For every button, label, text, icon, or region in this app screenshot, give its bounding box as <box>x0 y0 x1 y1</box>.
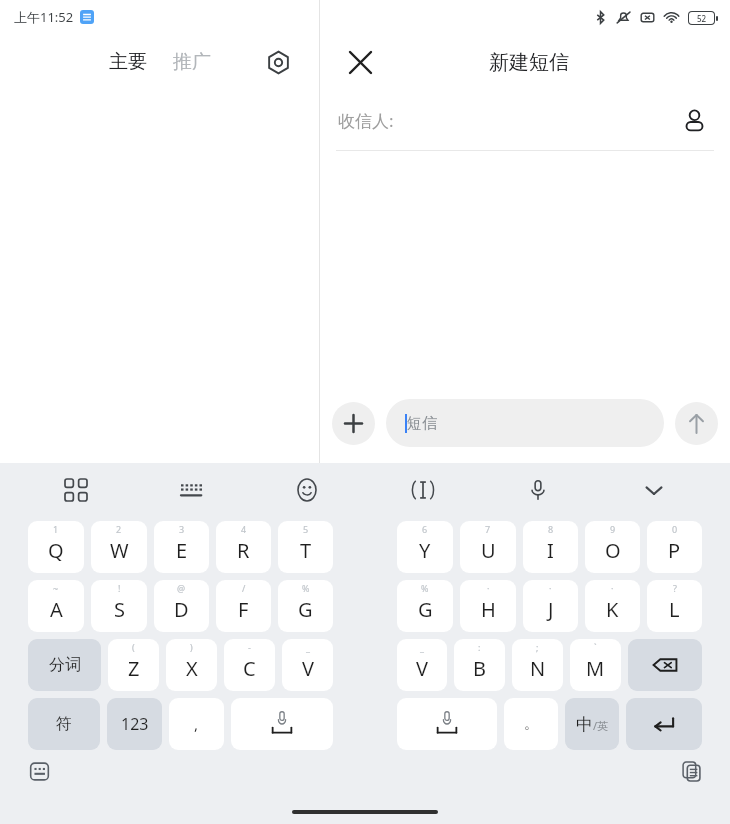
staticText: , <box>194 714 199 734</box>
staticText: 分词 <box>49 655 81 675</box>
button[interactable]: Enter <box>626 698 702 750</box>
button[interactable]: - <box>224 639 275 691</box>
staticText: /英 <box>593 718 609 733</box>
button[interactable]: ~ <box>28 580 84 632</box>
button[interactable]: Space <box>397 698 497 750</box>
button[interactable]: , <box>169 698 224 750</box>
button[interactable]: 6 <box>397 521 453 573</box>
button[interactable]: 符 <box>28 698 100 750</box>
staticText: 1 <box>53 523 59 535</box>
staticText: 符 <box>56 714 72 734</box>
staticText: ? <box>673 582 677 594</box>
staticText: V <box>416 655 428 682</box>
button[interactable]: · <box>460 580 516 632</box>
button[interactable]: ) <box>166 639 217 691</box>
button[interactable]: Settings <box>257 41 299 83</box>
button[interactable]: ( <box>108 639 159 691</box>
button[interactable]: 0 <box>647 521 702 573</box>
button[interactable]: ? <box>647 580 702 632</box>
button[interactable]: Apps <box>56 470 96 510</box>
staticText: N <box>530 655 546 682</box>
button[interactable]: Keyboard layout <box>172 470 212 510</box>
button[interactable]: 7 <box>460 521 516 573</box>
button[interactable]: 8 <box>523 521 578 573</box>
staticText: V <box>302 655 314 682</box>
button[interactable]: Choose contact <box>676 102 712 138</box>
staticText: 上午11:52 <box>14 8 74 26</box>
button[interactable]: 5 <box>278 521 333 573</box>
button[interactable]: 。 <box>504 698 558 750</box>
button[interactable]: @ <box>154 580 209 632</box>
button[interactable]: Send <box>675 402 718 445</box>
staticText: _ <box>306 641 310 653</box>
button[interactable]: Clipboard <box>674 754 708 788</box>
button[interactable]: ` <box>570 639 621 691</box>
staticText: 推广 <box>173 50 211 74</box>
button[interactable]: 中 <box>565 698 619 750</box>
button[interactable]: _ <box>397 639 447 691</box>
button[interactable]: 推广 <box>168 43 216 81</box>
staticText: E <box>176 537 188 564</box>
button[interactable]: Delete <box>628 639 702 691</box>
staticText: ) <box>190 641 193 653</box>
staticText: B <box>473 655 486 682</box>
staticText: 3 <box>179 523 185 535</box>
staticText: C <box>243 655 256 682</box>
staticText: M <box>586 655 605 682</box>
button[interactable]: % <box>278 580 333 632</box>
button[interactable]: Close <box>338 40 382 84</box>
staticText: 9 <box>610 523 616 535</box>
staticText: : <box>478 641 481 653</box>
staticText: / <box>242 582 246 594</box>
staticText: I <box>547 537 554 564</box>
button[interactable]: _ <box>282 639 333 691</box>
staticText: A <box>50 596 63 623</box>
button[interactable]: ! <box>91 580 147 632</box>
staticText: G <box>418 596 433 623</box>
button[interactable]: Emoji <box>287 470 327 510</box>
staticText: _ <box>420 641 424 653</box>
staticText: 0 <box>672 523 678 535</box>
button[interactable]: / <box>216 580 271 632</box>
staticText: 。 <box>524 715 538 733</box>
staticText: T <box>300 537 312 564</box>
staticText: 8 <box>548 523 554 535</box>
staticText: Z <box>128 655 140 682</box>
button[interactable]: Keyboard settings <box>22 754 56 788</box>
staticText: 6 <box>422 523 428 535</box>
button[interactable]: · <box>523 580 578 632</box>
button[interactable]: Voice input <box>518 470 558 510</box>
button[interactable]: 2 <box>91 521 147 573</box>
staticText: G <box>298 596 313 623</box>
staticText: ` <box>594 641 597 653</box>
staticText: F <box>238 596 249 623</box>
button[interactable]: 收信人: <box>320 90 730 150</box>
button[interactable]: Add attachment <box>332 402 375 445</box>
button[interactable]: ; <box>512 639 563 691</box>
staticText: % <box>421 582 429 594</box>
button[interactable]: Hide keyboard <box>634 470 674 510</box>
staticText: L <box>669 596 680 623</box>
button[interactable]: 短信 <box>386 399 664 447</box>
button[interactable]: 9 <box>585 521 640 573</box>
button[interactable]: 3 <box>154 521 209 573</box>
staticText: D <box>174 596 189 623</box>
staticText: 2 <box>116 523 122 535</box>
staticText: 主要 <box>109 50 147 74</box>
button[interactable]: · <box>585 580 640 632</box>
button[interactable]: 4 <box>216 521 271 573</box>
staticText: X <box>186 655 198 682</box>
staticText: 4 <box>241 523 247 535</box>
button[interactable]: Space <box>231 698 333 750</box>
staticText: 短信 <box>407 414 437 433</box>
button[interactable]: 1 <box>28 521 84 573</box>
button[interactable]: : <box>454 639 505 691</box>
staticText: 收信人: <box>338 109 394 132</box>
button[interactable]: 分词 <box>28 639 101 691</box>
button[interactable]: 123 <box>107 698 162 750</box>
staticText: Q <box>48 537 64 564</box>
button[interactable]: 主要 <box>104 43 152 81</box>
button[interactable]: % <box>397 580 453 632</box>
staticText: 5 <box>303 523 309 535</box>
button[interactable]: Text editing <box>403 470 443 510</box>
